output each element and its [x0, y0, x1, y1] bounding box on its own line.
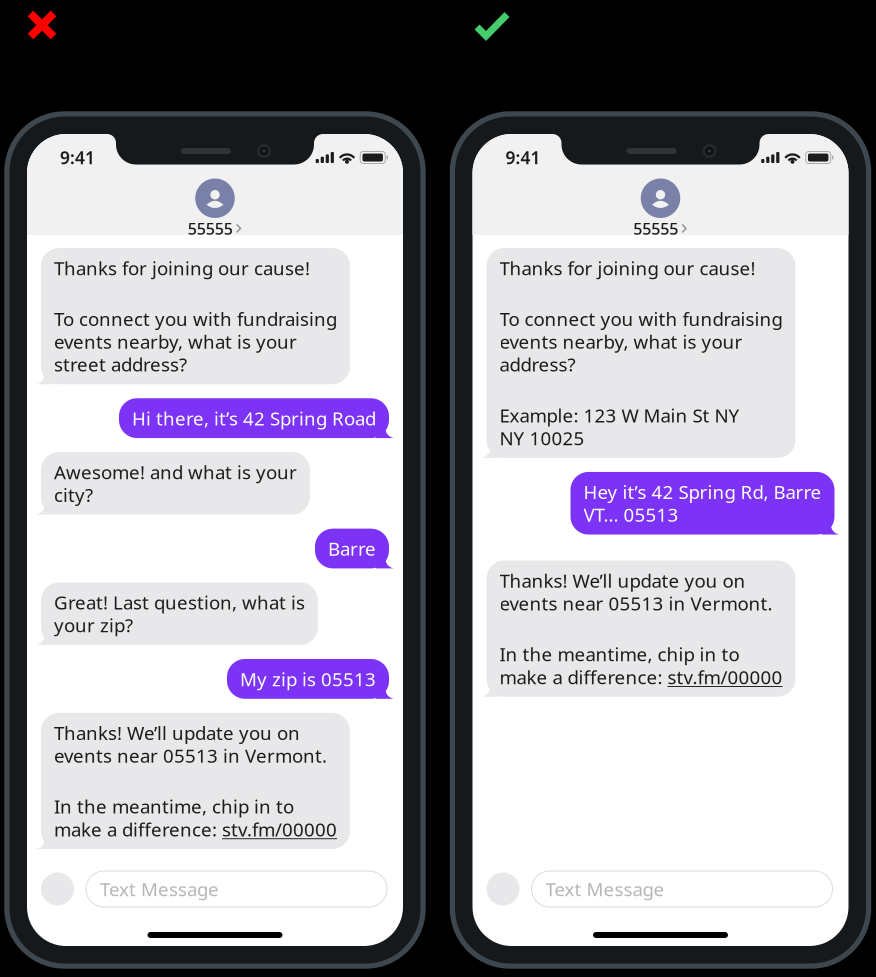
staticText: Text Message: [545, 877, 664, 901]
staticText: Awesome! and what is your city?: [54, 460, 297, 507]
staticText: Hey it’s 42 Spring Rd, Barre VT... 05513: [583, 479, 821, 527]
button[interactable]: Text Message field: [86, 871, 387, 907]
staticText: 55555: [633, 218, 678, 239]
staticText: Thanks for joining our cause! To connect…: [499, 255, 782, 450]
button[interactable]: Contact 55555: [633, 178, 688, 235]
button[interactable]: Text Message field: [531, 871, 832, 907]
button[interactable]: Add attachment: [486, 872, 519, 905]
staticText: 9:41: [60, 146, 95, 169]
staticText: 55555: [188, 218, 233, 239]
staticText: Great! Last question, what is your zip?: [54, 590, 305, 637]
button[interactable]: Contact 55555: [188, 178, 242, 235]
staticText: Thanks! We’ll update you on events near …: [499, 568, 782, 689]
staticText: Thanks for joining our cause! To connect…: [54, 255, 337, 377]
button[interactable]: Add attachment: [41, 872, 74, 905]
staticText: Barre: [328, 536, 376, 561]
staticText: Thanks! We’ll update you on events near …: [54, 720, 337, 842]
staticText: Text Message: [100, 877, 219, 901]
staticText: 9:41: [505, 146, 540, 169]
staticText: My zip is 05513: [240, 666, 376, 691]
staticText: Hi there, it’s 42 Spring Road: [132, 406, 376, 431]
